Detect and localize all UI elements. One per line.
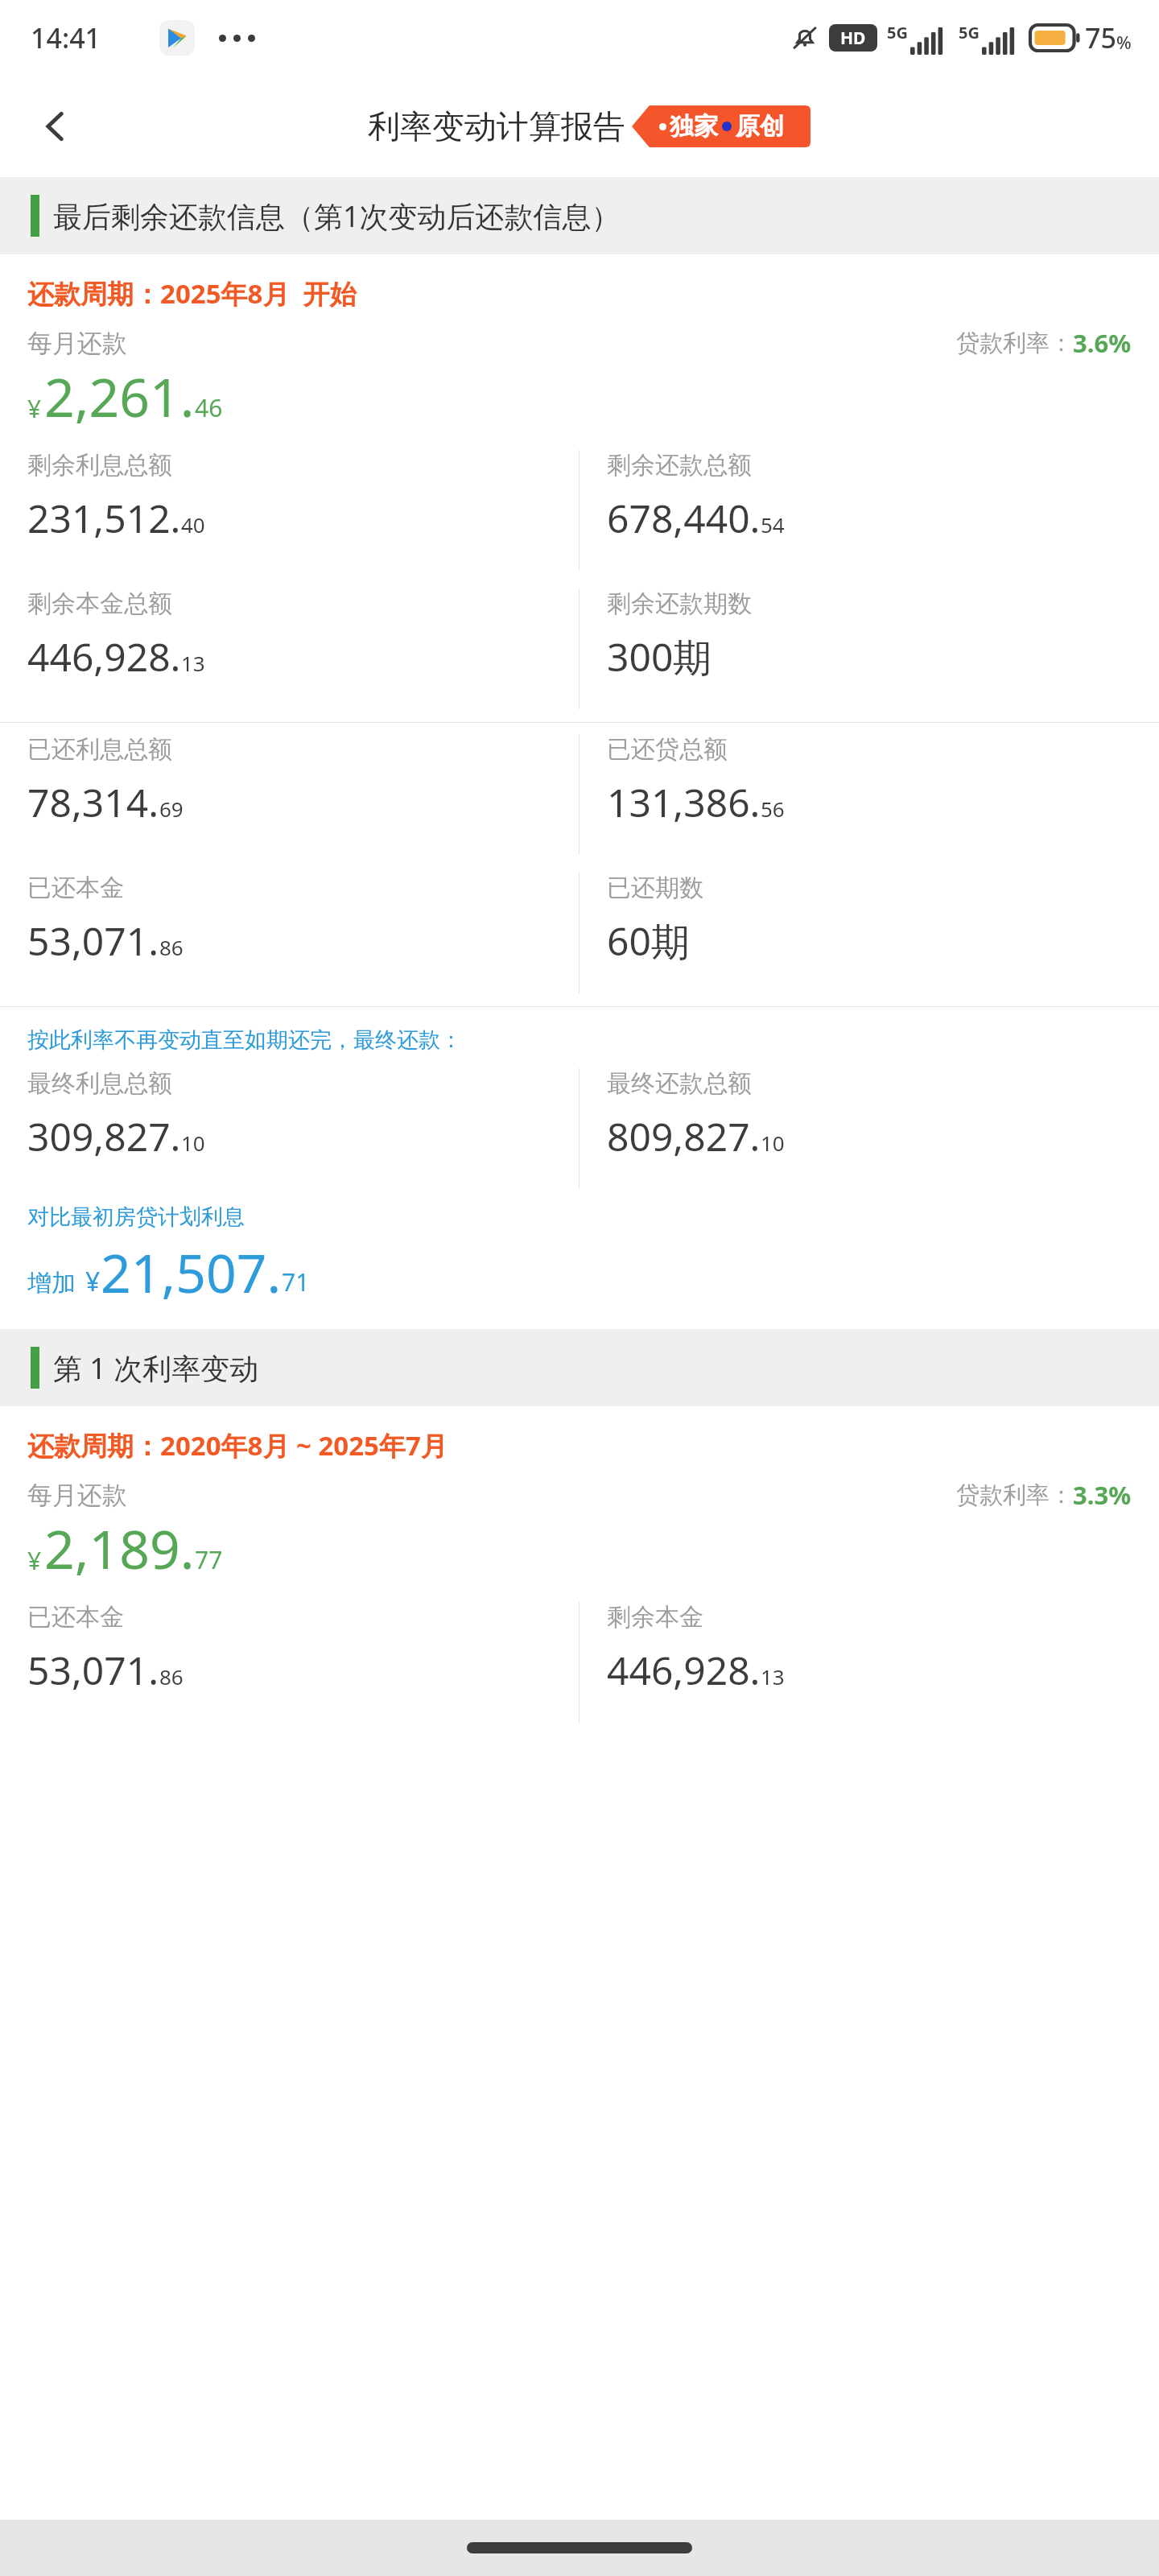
staticText: 300期: [607, 630, 712, 683]
staticText: 3.3%: [1073, 1478, 1132, 1512]
staticText: 增加: [27, 1268, 76, 1298]
staticText: 剩余本金总额: [27, 588, 172, 619]
staticText: 3.6%: [1073, 326, 1132, 360]
staticText: 剩余本金: [607, 1602, 703, 1633]
staticText: 86: [159, 1662, 184, 1690]
staticText: 75: [1085, 19, 1116, 56]
staticText: 已还本金: [27, 1602, 124, 1633]
staticText: 231,512.: [27, 492, 181, 544]
staticText: 最后剩余还款信息（第1次变动后还款信息）: [53, 196, 621, 236]
button[interactable]: Back: [21, 92, 90, 161]
staticText: 77: [195, 1543, 223, 1576]
staticText: 第 1 次利率变动: [53, 1348, 259, 1388]
staticText: 54: [761, 510, 785, 539]
staticText: 每月还款: [27, 328, 127, 359]
staticText: ¥: [27, 392, 42, 425]
staticText: 2,261.: [44, 360, 195, 432]
staticText: 13: [761, 1662, 785, 1690]
staticText: 40: [181, 510, 205, 539]
staticText: 86: [159, 933, 184, 961]
staticText: 53,071.: [27, 914, 159, 967]
staticText: 60期: [607, 914, 690, 968]
staticText: 已还贷总额: [607, 734, 728, 765]
staticText: 71: [282, 1265, 310, 1298]
staticText: 对比最初房贷计划利息: [27, 1203, 245, 1231]
staticText: 446,928.: [607, 1644, 761, 1696]
staticText: 剩余利息总额: [27, 450, 172, 481]
staticText: 剩余还款期数: [607, 588, 752, 619]
staticText: 已还利息总额: [27, 734, 172, 765]
staticText: 贷款利率：: [956, 1480, 1073, 1510]
staticText: 53,071.: [27, 1644, 159, 1696]
staticText: 14:41: [31, 19, 101, 56]
staticText: %: [1116, 30, 1132, 54]
staticText: 每月还款: [27, 1480, 127, 1511]
staticText: 5G: [887, 22, 908, 43]
staticText: 5G: [959, 22, 980, 43]
staticText: 10: [181, 1129, 205, 1157]
staticText: 利率变动计算报告: [368, 106, 625, 147]
staticText: HD: [840, 27, 866, 50]
staticText: 131,386.: [607, 776, 761, 828]
staticText: 46: [195, 391, 223, 424]
staticText: 2,189.: [44, 1512, 195, 1584]
staticText: 10: [761, 1129, 785, 1157]
staticText: ¥: [27, 1544, 42, 1577]
staticText: 21,507.: [101, 1236, 282, 1308]
staticText: 56: [761, 795, 785, 823]
staticText: 69: [159, 795, 184, 823]
staticText: ¥: [85, 1264, 101, 1299]
staticText: 已还期数: [607, 873, 703, 903]
staticText: 678,440.: [607, 492, 761, 544]
staticText: 78,314.: [27, 776, 159, 828]
staticText: 最终利息总额: [27, 1068, 172, 1099]
staticText: 还款周期：2020年8月 ~ 2025年7月: [27, 1427, 448, 1463]
staticText: 446,928.: [27, 630, 181, 683]
staticText: 按此利率不再变动直至如期还完，最终还款：: [27, 1026, 462, 1054]
staticText: 最终还款总额: [607, 1068, 752, 1099]
staticText: 贷款利率：: [956, 328, 1073, 358]
staticText: 还款周期：2025年8月 开始: [27, 275, 357, 312]
staticText: 剩余还款总额: [607, 450, 752, 481]
staticText: 已还本金: [27, 873, 124, 903]
staticText: 独家: [670, 111, 718, 142]
staticText: 809,827.: [607, 1110, 761, 1162]
staticText: 原创: [736, 111, 784, 142]
staticText: 309,827.: [27, 1110, 181, 1162]
staticText: 13: [181, 649, 205, 677]
